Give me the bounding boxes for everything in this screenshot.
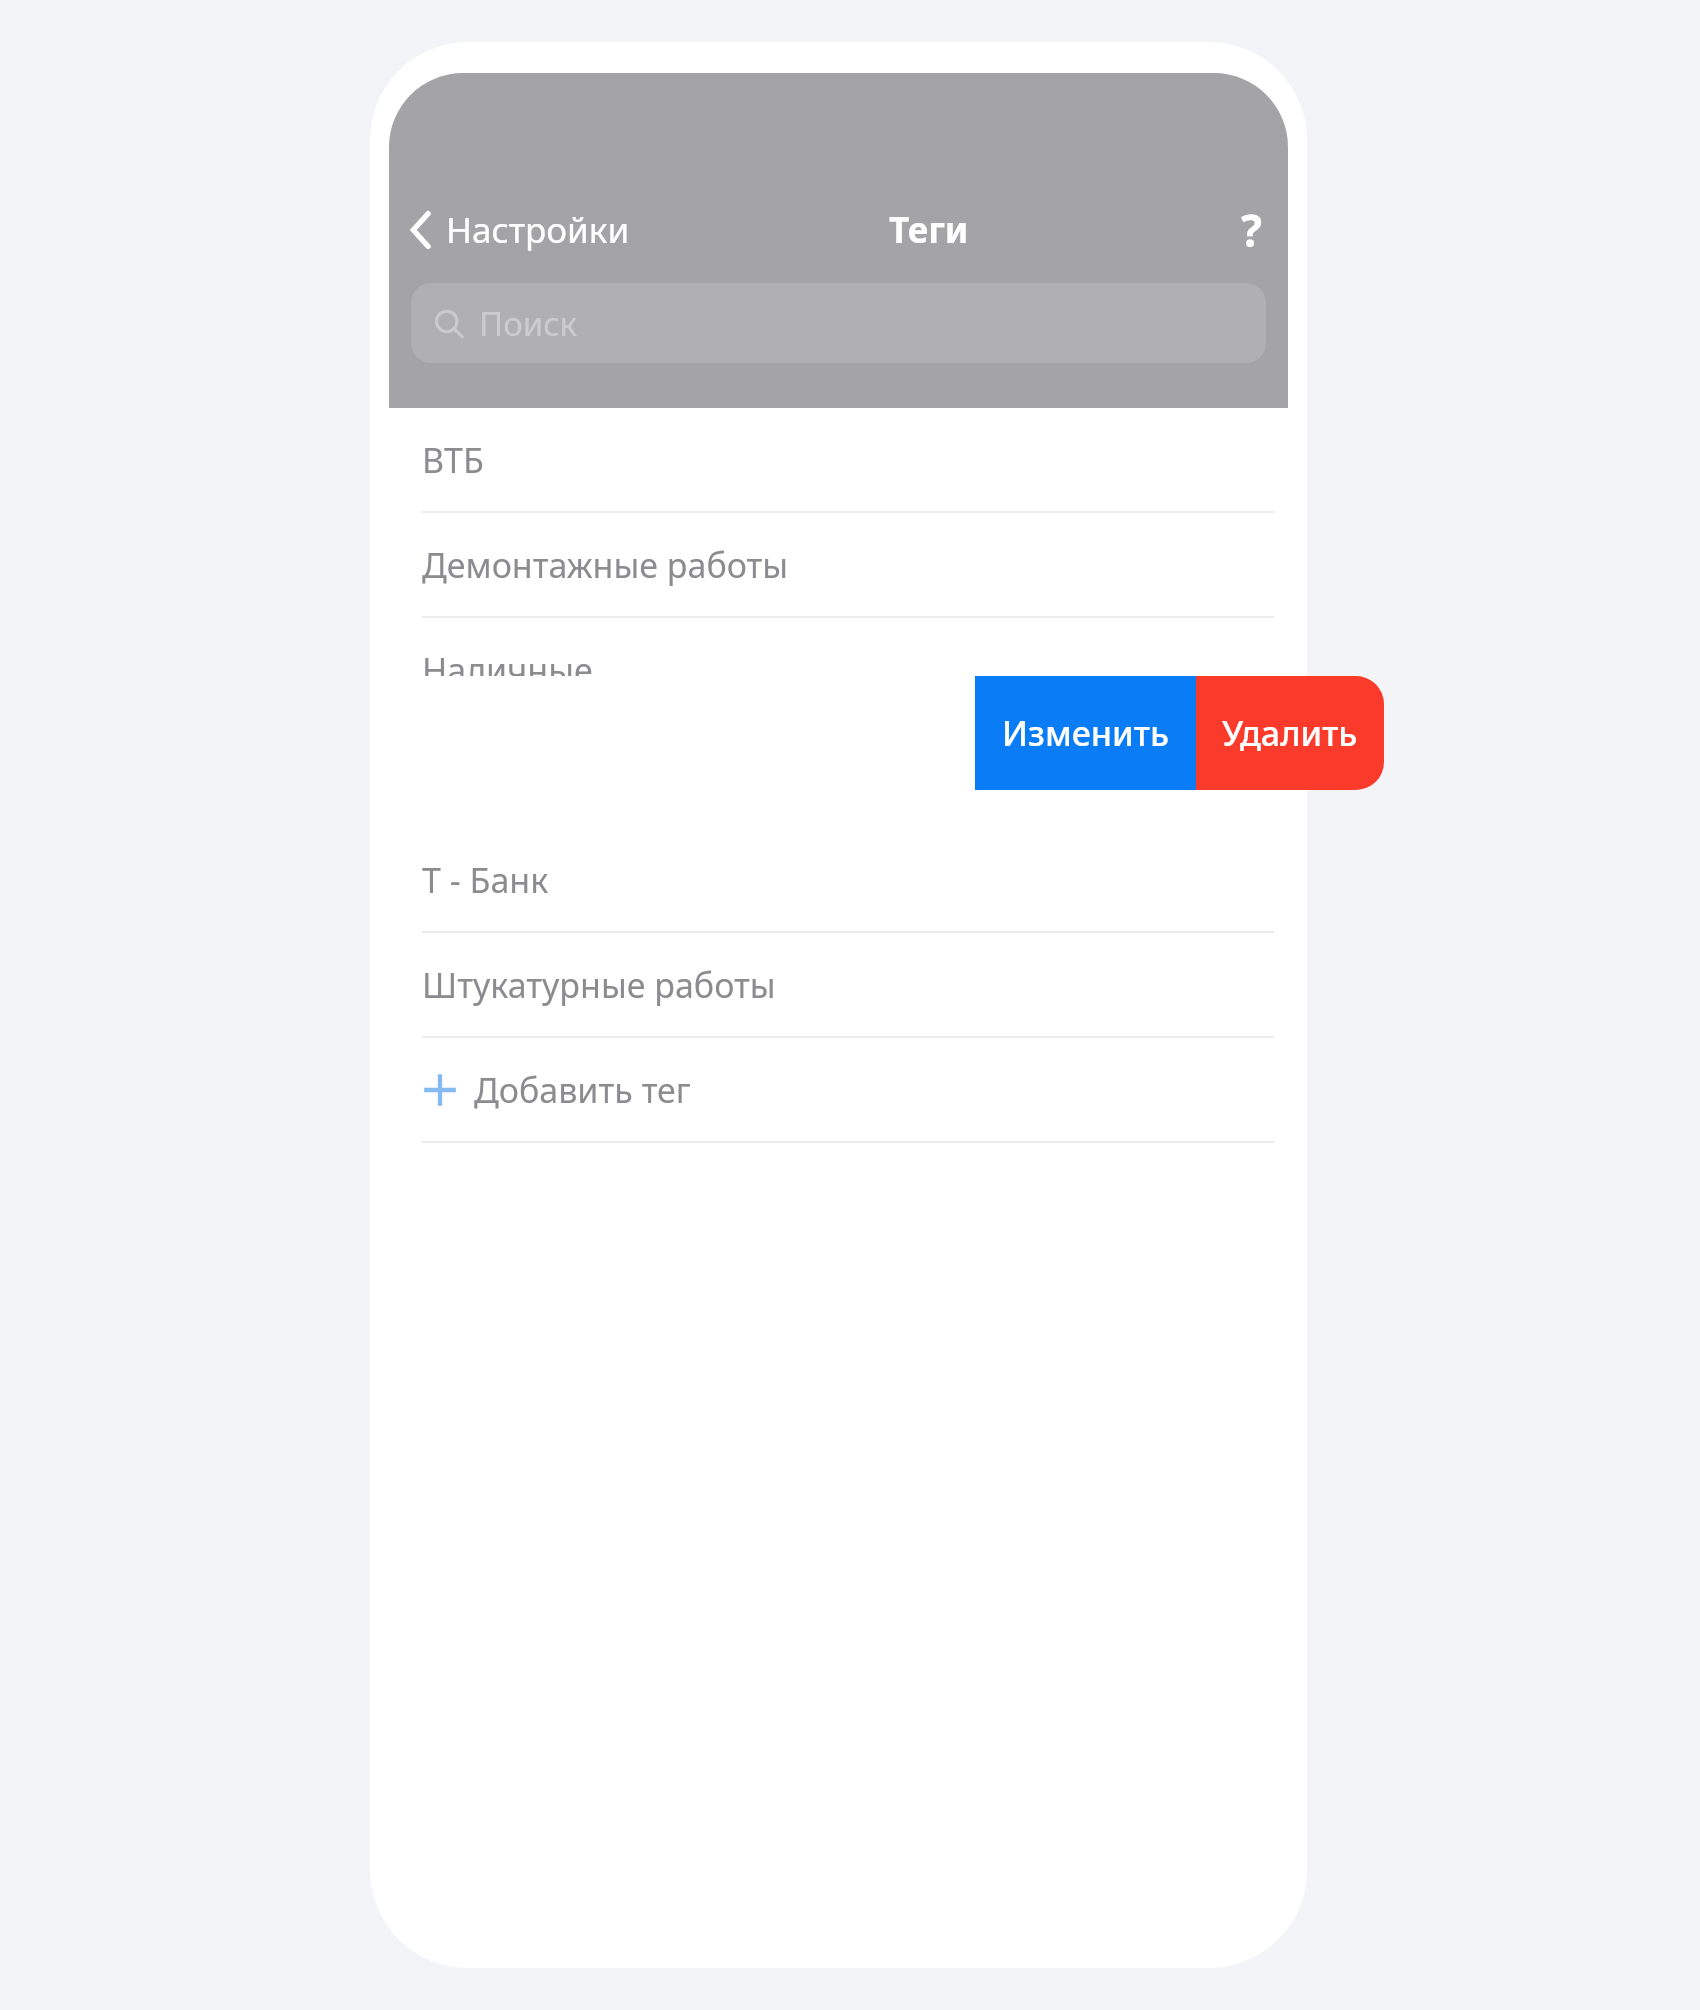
staticText: Наличные [422,647,593,693]
button[interactable]: ВТБ [389,408,1288,513]
staticText: Удалить [1222,710,1358,756]
staticText: Поиск [479,301,578,346]
button[interactable]: Настройки [389,198,644,262]
staticText: Демонтажные работы [422,542,789,588]
staticText: ? [1241,200,1262,260]
staticText: Теги [889,206,969,254]
button[interactable]: Штукатурные работы [389,933,1288,1038]
staticText: Настройки [446,206,630,254]
staticText: Изменить [1002,710,1169,756]
staticText: Добавить тег [474,1067,691,1113]
button[interactable]: Т - Банк [389,828,1288,933]
button[interactable]: Наличные [389,618,1288,723]
button[interactable]: Изменить [975,676,1196,790]
button[interactable]: Добавить тег [389,1038,1288,1143]
staticText: Штукатурные работы [422,962,776,1008]
button[interactable]: Поиск [411,283,1266,363]
button[interactable]: Help [1215,194,1288,266]
button[interactable]: Демонтажные работы [389,513,1288,618]
staticText: Т - Банк [422,857,549,903]
button[interactable]: Удалить [1196,676,1384,790]
staticText: ВТБ [422,437,484,483]
